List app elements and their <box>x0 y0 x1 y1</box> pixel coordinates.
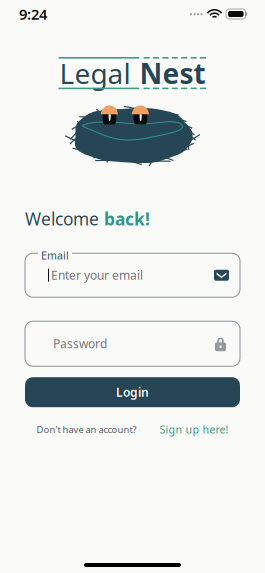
staticText: Welcome <box>25 207 104 230</box>
staticText: Sign up here! <box>159 422 228 436</box>
staticText: Don't have an account? <box>36 423 136 435</box>
staticText: Nest <box>139 54 205 92</box>
staticText: Login <box>116 384 149 400</box>
staticText: Password <box>53 336 107 352</box>
staticText: 9:24 <box>19 4 47 24</box>
button[interactable]: Login <box>25 377 240 407</box>
staticText: Legal <box>59 54 130 92</box>
staticText: back! <box>104 207 150 230</box>
staticText: Enter your email <box>51 267 143 283</box>
staticText: Email <box>41 248 69 262</box>
button[interactable]: Sign up here! <box>159 422 228 436</box>
